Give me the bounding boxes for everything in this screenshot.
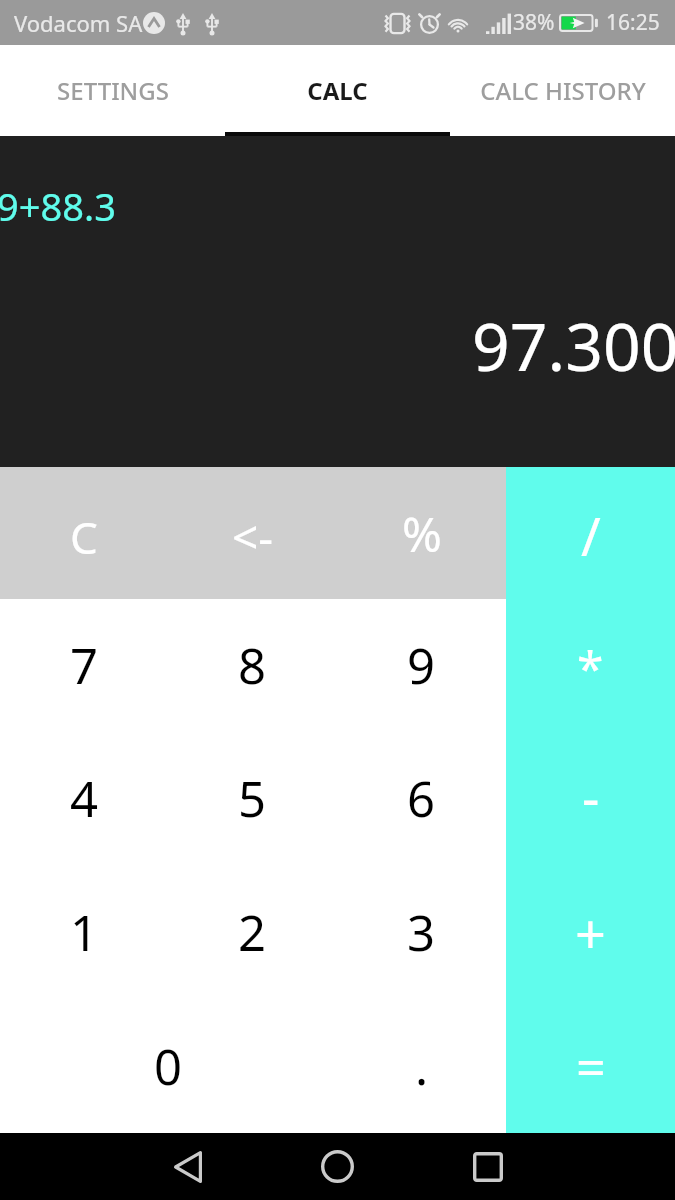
- button[interactable]: 2: [168, 865, 337, 999]
- button[interactable]: .: [337, 999, 506, 1133]
- button[interactable]: +: [506, 865, 675, 999]
- button[interactable]: 5: [168, 732, 337, 865]
- staticText: 7: [70, 632, 99, 699]
- staticText: CALC: [307, 74, 368, 107]
- button[interactable]: SETTINGS: [0, 45, 225, 136]
- button[interactable]: 6: [337, 732, 506, 865]
- staticText: C: [70, 507, 98, 567]
- staticText: +: [575, 896, 606, 970]
- staticText: 8: [238, 632, 267, 699]
- button[interactable]: 7: [0, 599, 168, 732]
- button[interactable]: CALC: [225, 45, 450, 136]
- button[interactable]: /: [506, 467, 675, 599]
- staticText: Vodacom SA: [14, 8, 143, 38]
- button[interactable]: =: [506, 999, 675, 1133]
- button[interactable]: CALC HISTORY: [450, 45, 675, 136]
- button[interactable]: 8: [168, 599, 337, 732]
- staticText: 5: [238, 765, 267, 832]
- button[interactable]: 9: [337, 599, 506, 732]
- button[interactable]: 1: [0, 865, 168, 999]
- staticText: 9+88.3: [0, 180, 116, 232]
- staticText: 9: [407, 632, 436, 699]
- staticText: SETTINGS: [57, 74, 169, 107]
- button[interactable]: Back: [137, 1133, 238, 1200]
- staticText: 16:25: [606, 8, 660, 37]
- staticText: -: [582, 760, 600, 834]
- button[interactable]: *: [506, 599, 675, 732]
- staticText: *: [577, 635, 604, 700]
- staticText: %: [402, 501, 442, 566]
- staticText: /: [581, 499, 601, 571]
- button[interactable]: C: [0, 467, 168, 599]
- staticText: 6: [407, 765, 436, 832]
- button[interactable]: 3: [337, 865, 506, 999]
- staticText: =: [576, 1031, 606, 1102]
- staticText: 0: [154, 1033, 183, 1100]
- button[interactable]: -: [506, 732, 675, 865]
- staticText: 2: [238, 899, 267, 966]
- staticText: 4: [70, 765, 99, 832]
- staticText: 1: [70, 899, 99, 966]
- button[interactable]: 4: [0, 732, 168, 865]
- staticText: 97.300: [472, 300, 675, 390]
- button[interactable]: Home: [287, 1133, 388, 1200]
- button[interactable]: <-: [168, 467, 337, 599]
- button[interactable]: 0: [0, 999, 337, 1133]
- staticText: CALC HISTORY: [480, 74, 646, 107]
- staticText: 38%: [513, 8, 555, 37]
- staticText: 3: [407, 899, 436, 966]
- button[interactable]: Recent apps: [437, 1133, 538, 1200]
- button[interactable]: %: [337, 467, 506, 599]
- staticText: .: [415, 1033, 429, 1100]
- staticText: <-: [232, 505, 274, 568]
